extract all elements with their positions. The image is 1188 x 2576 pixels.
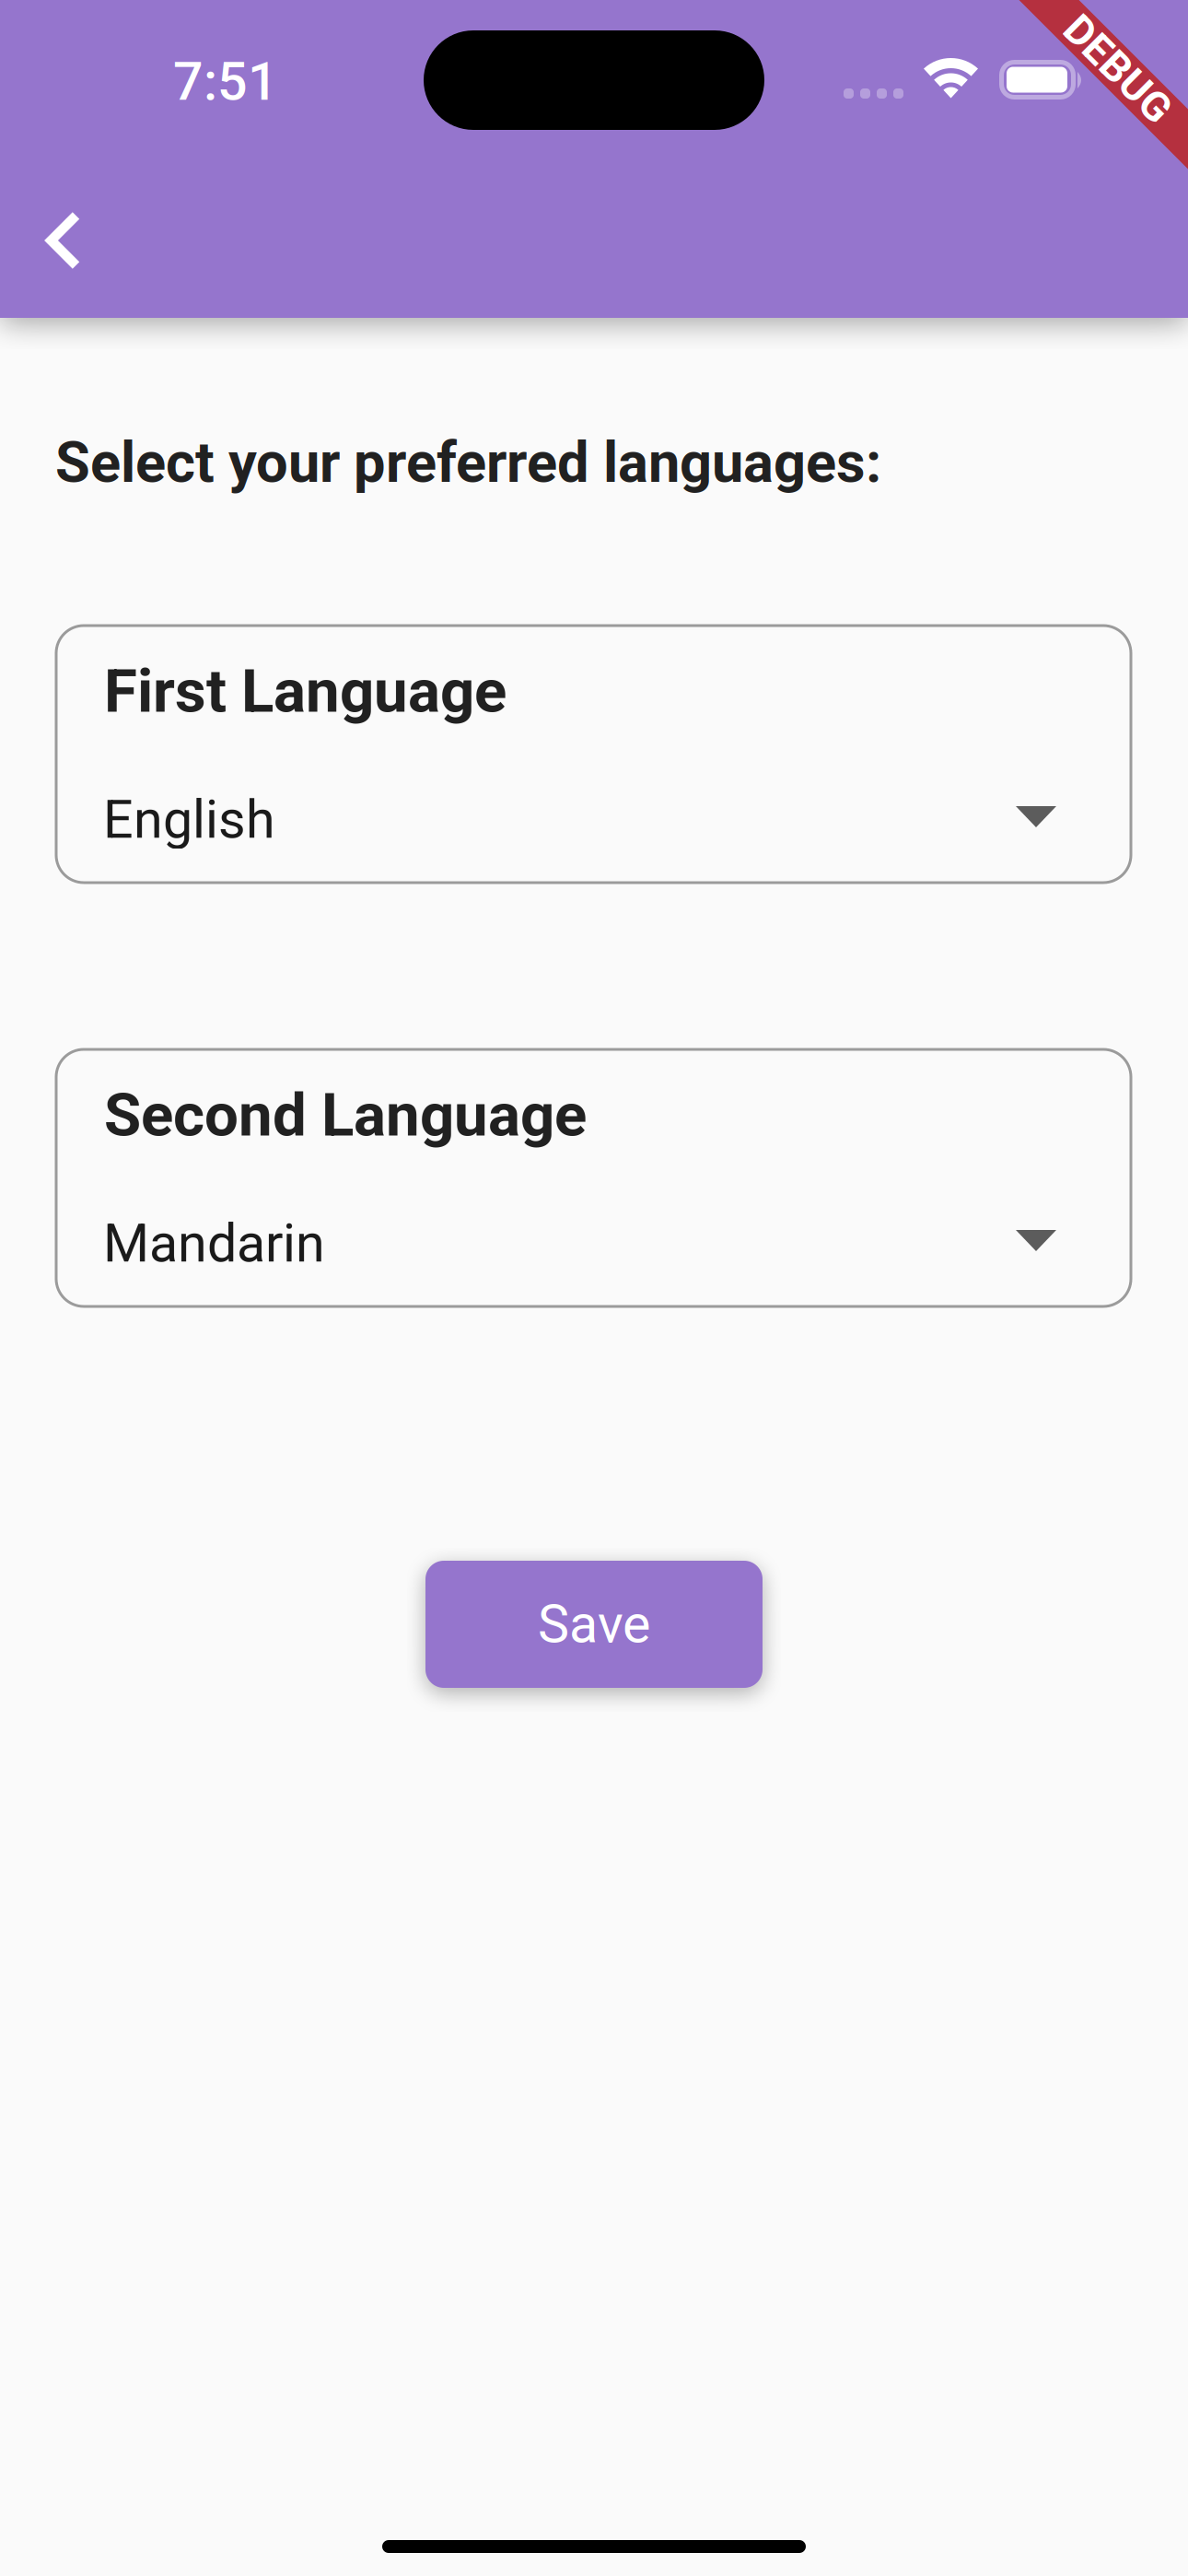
staticText: Save — [538, 1593, 650, 1655]
staticText: 7:51 — [173, 51, 278, 113]
button[interactable]: Back — [8, 185, 119, 296]
staticText: English — [103, 789, 275, 851]
button[interactable]: Second Language — [56, 1049, 1131, 1306]
staticText: First Language — [104, 656, 507, 727]
staticText: Second Language — [104, 1080, 587, 1150]
button[interactable]: First Language — [56, 626, 1131, 883]
staticText: DEBUG — [1051, 45, 1185, 94]
button[interactable]: Save — [425, 1561, 763, 1688]
staticText: Select your preferred languages: — [55, 429, 881, 496]
staticText: Mandarin — [103, 1212, 325, 1274]
